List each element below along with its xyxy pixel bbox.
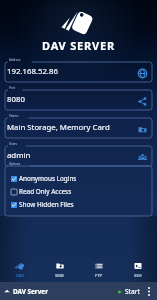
button[interactable]: Start [115, 285, 142, 298]
button[interactable]: Folders [134, 121, 150, 137]
button[interactable]: Users [134, 149, 150, 165]
button[interactable]: Network [134, 65, 150, 81]
staticText: admin [7, 150, 31, 161]
button[interactable]: Anonymous Logins [11, 172, 152, 185]
staticText: Start [125, 287, 140, 296]
button[interactable]: Read Only Access [11, 185, 152, 198]
staticText: Options [9, 162, 21, 166]
button[interactable]: Share [134, 93, 150, 109]
staticText: SMB [55, 273, 64, 279]
button[interactable]: FTP [79, 252, 118, 282]
button[interactable]: More options [144, 283, 153, 299]
staticText: DAV Server [13, 287, 49, 296]
button[interactable]: Address [5, 56, 152, 84]
staticText: DAV [16, 273, 24, 279]
button[interactable]: SSH [118, 252, 157, 282]
staticText: 192.168.52.86 [7, 66, 58, 77]
staticText: FTP [95, 273, 103, 279]
staticText: SSH [134, 273, 142, 279]
staticText: 8080 [7, 94, 25, 105]
staticText: Address [9, 58, 21, 62]
button[interactable]: Shares [5, 112, 152, 140]
button[interactable]: DAV [0, 252, 40, 282]
staticText: Anonymous Logins [19, 174, 77, 183]
staticText: Main Storage, Memory Card [7, 122, 110, 133]
staticText: Port [9, 86, 15, 90]
button[interactable]: Users [5, 140, 152, 168]
button[interactable]: SMB [40, 252, 79, 282]
staticText: DAV SERVER [42, 38, 115, 53]
button[interactable]: Port [5, 84, 152, 112]
staticText: Read Only Access [19, 187, 72, 196]
staticText: Shares [9, 114, 19, 118]
staticText: Users [9, 142, 17, 146]
button[interactable]: Show Hidden Files [11, 198, 152, 211]
staticText: Show Hidden Files [19, 200, 74, 209]
